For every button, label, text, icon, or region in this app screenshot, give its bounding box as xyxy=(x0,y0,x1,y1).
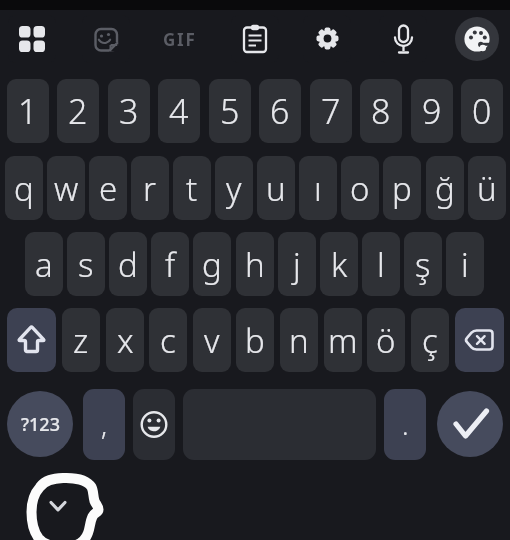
staticText: s xyxy=(78,242,94,287)
button[interactable]: 5 xyxy=(209,79,251,143)
staticText: ?123 xyxy=(21,412,60,437)
button[interactable]: 2 xyxy=(57,79,99,143)
staticText: m xyxy=(328,318,358,363)
staticText: o xyxy=(350,166,370,211)
button[interactable] xyxy=(133,389,175,460)
button[interactable]: t xyxy=(173,156,211,220)
staticText: c xyxy=(160,318,176,363)
button[interactable]: GIF xyxy=(156,15,204,63)
button[interactable]: y xyxy=(215,156,253,220)
button[interactable]: 1 xyxy=(7,79,49,143)
staticText: 2 xyxy=(68,88,88,134)
button[interactable]: ü xyxy=(468,156,506,220)
staticText: 3 xyxy=(119,88,139,134)
button[interactable]: , xyxy=(83,389,125,460)
button[interactable]: c xyxy=(149,308,187,372)
staticText: h xyxy=(245,242,265,287)
button[interactable]: u xyxy=(257,156,295,220)
staticText: e xyxy=(99,166,118,211)
staticText: r xyxy=(143,166,157,211)
button[interactable]: . xyxy=(384,389,426,460)
staticText: 1 xyxy=(18,88,38,134)
button[interactable]: l xyxy=(362,232,400,296)
button[interactable]: x xyxy=(106,308,144,372)
button[interactable] xyxy=(231,15,279,63)
staticText: 7 xyxy=(321,88,341,134)
button[interactable] xyxy=(379,15,427,63)
staticText: . xyxy=(402,406,409,443)
button[interactable]: w xyxy=(47,156,85,220)
staticText: x xyxy=(117,318,134,363)
staticText: ı xyxy=(314,166,322,211)
staticText: 6 xyxy=(270,88,290,134)
button[interactable]: f xyxy=(151,232,189,296)
button[interactable]: o xyxy=(341,156,379,220)
button[interactable]: 8 xyxy=(360,79,402,143)
staticText: g xyxy=(202,242,222,287)
button[interactable] xyxy=(82,15,130,63)
staticText: ü xyxy=(477,166,497,211)
button[interactable]: ?123 xyxy=(7,391,73,457)
staticText: q xyxy=(14,166,34,211)
button[interactable]: n xyxy=(280,308,318,372)
button[interactable]: e xyxy=(89,156,127,220)
staticText: l xyxy=(377,242,385,287)
staticText: 9 xyxy=(422,88,442,134)
staticText: a xyxy=(35,242,53,287)
button[interactable]: d xyxy=(109,232,147,296)
staticText: ğ xyxy=(435,166,455,211)
staticText: ö xyxy=(376,318,396,363)
button[interactable]: 7 xyxy=(310,79,352,143)
staticText: k xyxy=(331,242,348,287)
staticText: p xyxy=(392,166,412,211)
button[interactable]: m xyxy=(324,308,362,372)
button[interactable]: z xyxy=(62,308,100,372)
button[interactable]: ğ xyxy=(426,156,464,220)
button[interactable] xyxy=(7,308,56,372)
staticText: t xyxy=(186,166,198,211)
button[interactable] xyxy=(8,15,56,63)
button[interactable]: h xyxy=(236,232,274,296)
button[interactable]: ç xyxy=(411,308,449,372)
button[interactable]: 9 xyxy=(411,79,453,143)
button[interactable]: ö xyxy=(367,308,405,372)
button[interactable]: 0 xyxy=(461,79,503,143)
staticText: 0 xyxy=(472,88,492,134)
button[interactable]: v xyxy=(193,308,231,372)
staticText: , xyxy=(101,406,108,443)
staticText: 8 xyxy=(371,88,391,134)
staticText: z xyxy=(73,318,89,363)
staticText: y xyxy=(226,166,242,211)
button[interactable]: 3 xyxy=(108,79,150,143)
staticText: u xyxy=(266,166,286,211)
staticText: w xyxy=(54,166,79,211)
staticText: i xyxy=(461,242,469,287)
button[interactable]: i xyxy=(446,232,484,296)
button[interactable]: 6 xyxy=(259,79,301,143)
staticText: j xyxy=(293,242,301,287)
button[interactable] xyxy=(303,15,351,63)
button[interactable]: q xyxy=(5,156,43,220)
staticText: 5 xyxy=(220,88,240,134)
button[interactable]: s xyxy=(67,232,105,296)
staticText: n xyxy=(289,318,309,363)
button[interactable]: 4 xyxy=(158,79,200,143)
button[interactable]: j xyxy=(278,232,316,296)
button[interactable]: ı xyxy=(299,156,337,220)
button[interactable] xyxy=(437,391,503,457)
button[interactable]: ş xyxy=(404,232,442,296)
button[interactable]: p xyxy=(383,156,421,220)
staticText: GIF xyxy=(163,28,197,51)
button[interactable]: r xyxy=(131,156,169,220)
staticText: f xyxy=(165,242,176,287)
button[interactable]: a xyxy=(25,232,63,296)
button[interactable]: b xyxy=(236,308,274,372)
button[interactable] xyxy=(455,308,504,372)
staticText: d xyxy=(118,242,138,287)
button[interactable] xyxy=(455,17,499,61)
button[interactable]: g xyxy=(193,232,231,296)
staticText: ş xyxy=(415,242,431,287)
button[interactable]: k xyxy=(320,232,358,296)
staticText: 4 xyxy=(169,88,189,134)
